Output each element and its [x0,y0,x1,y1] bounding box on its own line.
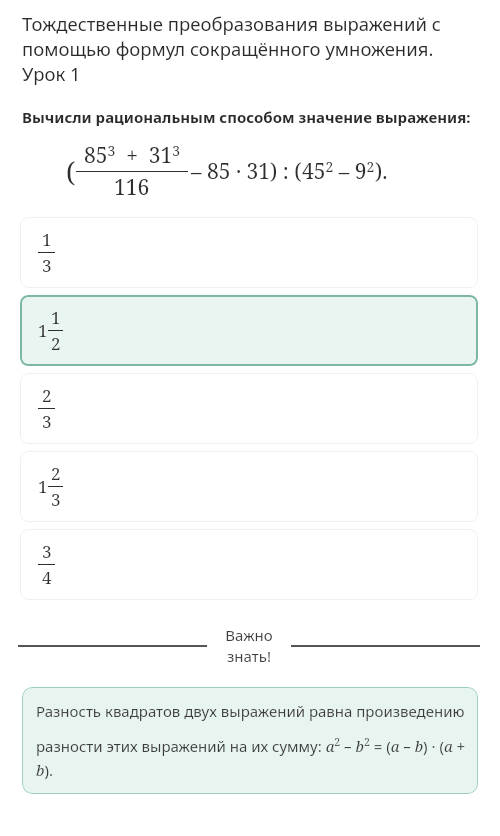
staticText: Важно знать! [225,625,273,667]
button[interactable]: 2 [20,373,478,444]
staticText: 3 [42,410,52,433]
button[interactable]: 1 [20,295,478,366]
staticText: 853 + 313 [84,141,181,170]
staticText: – 85 · 31) : ( [191,157,302,186]
staticText: 3 [42,254,52,277]
staticText: Вычисли рациональным способом значение в… [22,107,471,127]
button[interactable]: 1 [20,217,478,288]
staticText: 4 [42,566,52,589]
staticText: 1 [42,228,52,251]
staticText: 3 [51,488,61,511]
staticText: 1 [51,306,61,329]
staticText: Тождественные преобразования выражений с… [22,11,476,86]
button[interactable]: 3 [20,529,478,600]
staticText: 452 – 92 [302,157,375,186]
button[interactable]: 1 [20,451,478,522]
staticText: 2 [51,462,61,485]
staticText: ( [66,153,76,190]
staticText: ). [375,157,388,186]
staticText: 2 [42,384,52,407]
staticText: 1 [38,475,48,498]
staticText: Разность квадратов двух выражений равна … [36,701,470,780]
staticText: 3 [42,540,52,563]
staticText: 116 [114,173,150,202]
staticText: 2 [51,332,61,355]
staticText: 1 [38,319,48,342]
button[interactable]: Разность квадратов двух выражений равна … [22,687,478,794]
